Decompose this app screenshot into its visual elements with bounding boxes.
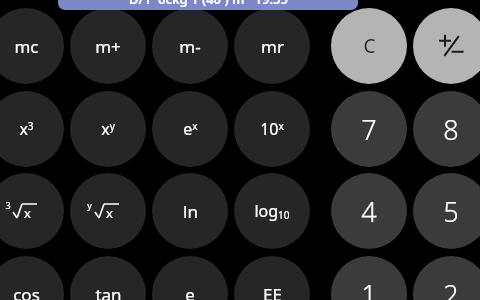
staticText: mc <box>14 35 39 58</box>
staticText: e <box>185 283 195 300</box>
staticText: tan <box>95 283 122 300</box>
button[interactable]: 4 <box>331 173 407 249</box>
staticText: cos <box>13 283 40 300</box>
button[interactable]: 2 <box>413 256 480 300</box>
staticText: ex <box>183 118 198 140</box>
button[interactable]: ten to the x <box>234 91 310 167</box>
staticText: mr <box>261 35 284 58</box>
button[interactable]: 7 <box>331 91 407 167</box>
staticText: xy <box>101 118 115 140</box>
staticText: m+ <box>95 35 121 58</box>
staticText: 8 <box>443 111 459 148</box>
button[interactable]: D/1 6ckg 1 (40 ) m 19:55 <box>58 0 358 10</box>
button[interactable]: exponent <box>234 256 310 300</box>
staticText: 3 <box>5 199 11 211</box>
button[interactable]: Plus minus <box>413 8 480 84</box>
staticText: log10 <box>254 200 290 222</box>
staticText: 2 <box>443 276 459 300</box>
button[interactable]: x cubed <box>0 91 64 167</box>
staticText: 4 <box>361 193 377 230</box>
staticText: 10x <box>260 118 284 140</box>
button[interactable]: Clear <box>331 8 407 84</box>
button[interactable]: y root of x <box>70 173 146 249</box>
staticText: 5 <box>443 193 459 230</box>
staticText: D/1 6ckg 1 (40 ) m 19:55 <box>129 0 288 8</box>
staticText: ln <box>183 200 198 223</box>
staticText: 1 <box>361 276 377 300</box>
button[interactable]: 5 <box>413 173 480 249</box>
staticText: m- <box>179 35 201 58</box>
button[interactable]: natural log <box>152 173 228 249</box>
button[interactable]: 1 <box>331 256 407 300</box>
button[interactable]: x to the y <box>70 91 146 167</box>
button[interactable]: memory add <box>70 8 146 84</box>
staticText: C <box>363 33 376 59</box>
button[interactable]: tangent <box>70 256 146 300</box>
staticText: x <box>106 204 113 222</box>
staticText: x <box>24 204 31 222</box>
button[interactable]: memory recall <box>234 8 310 84</box>
button[interactable]: log base ten <box>234 173 310 249</box>
button[interactable]: memory clear <box>0 8 64 84</box>
staticText: EE <box>263 283 282 300</box>
button[interactable]: cosine <box>0 256 64 300</box>
button[interactable]: 8 <box>413 91 480 167</box>
button[interactable]: Euler's number <box>152 256 228 300</box>
button[interactable]: e to the x <box>152 91 228 167</box>
button[interactable]: memory subtract <box>152 8 228 84</box>
staticText: x3 <box>19 118 34 140</box>
staticText: y <box>87 199 92 211</box>
staticText: 7 <box>361 111 377 148</box>
button[interactable]: cube root of x <box>0 173 64 249</box>
